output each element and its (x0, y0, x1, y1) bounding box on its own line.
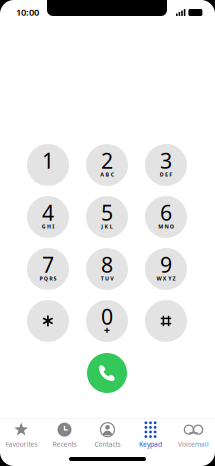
staticText: S (53, 275, 56, 282)
staticText: 3 (160, 146, 172, 175)
button[interactable]: 7 (27, 248, 69, 290)
staticText: W (157, 275, 162, 282)
staticText: J (101, 223, 103, 230)
staticText: K (104, 223, 108, 230)
staticText: E (165, 171, 168, 178)
staticText: 1 (42, 146, 54, 175)
staticText: I (52, 223, 54, 230)
staticText: 7 (42, 250, 54, 279)
staticText: 4 (42, 198, 54, 227)
button[interactable]: Keypad (129, 421, 172, 451)
staticText: Q (44, 275, 48, 282)
button[interactable]: 2 (86, 144, 128, 186)
staticText: B (105, 171, 109, 178)
button[interactable]: Recents (43, 421, 86, 451)
staticText: Favourites (5, 440, 37, 449)
staticText: R (49, 275, 52, 282)
staticText: H (47, 223, 51, 230)
button[interactable]: 8 (86, 248, 128, 290)
staticText: 10:00 (16, 6, 39, 18)
staticText: Voicemail (178, 440, 209, 449)
staticText: V (110, 275, 113, 282)
staticText: 5 (101, 198, 113, 227)
staticText: L (110, 223, 113, 230)
staticText: O (170, 223, 174, 230)
staticText: T (101, 275, 104, 282)
button[interactable]: Favourites (0, 421, 43, 451)
button[interactable]: Voicemail (172, 421, 215, 451)
staticText: C (111, 171, 114, 178)
staticText: U (105, 275, 109, 282)
staticText: Y (168, 275, 171, 282)
button[interactable] (27, 300, 69, 342)
staticText: 2 (101, 146, 113, 175)
button[interactable]: 6 (145, 196, 187, 238)
staticText: D (160, 171, 164, 178)
staticText: A (100, 171, 104, 178)
staticText: Contacts (94, 440, 120, 449)
button[interactable]: 1 (27, 144, 69, 186)
staticText: 6 (160, 198, 172, 227)
staticText: Recents (52, 440, 76, 449)
staticText: Z (172, 275, 175, 282)
staticText: 8 (101, 250, 113, 279)
button[interactable]: Call (87, 353, 127, 393)
staticText: F (169, 171, 172, 178)
staticText: P (39, 275, 42, 282)
button[interactable] (145, 300, 187, 342)
button[interactable]: 0 (86, 300, 128, 342)
button[interactable]: 4 (27, 196, 69, 238)
button[interactable]: 3 (145, 144, 187, 186)
button[interactable]: 5 (86, 196, 128, 238)
staticText: X (163, 275, 167, 282)
staticText: 9 (160, 250, 172, 279)
staticText: Keypad (139, 440, 162, 449)
button[interactable]: 9 (145, 248, 187, 290)
staticText: G (42, 223, 46, 230)
staticText: M (158, 223, 163, 230)
staticText: 0 (101, 302, 113, 331)
staticText: N (164, 223, 168, 230)
button[interactable]: Contacts (86, 421, 129, 451)
